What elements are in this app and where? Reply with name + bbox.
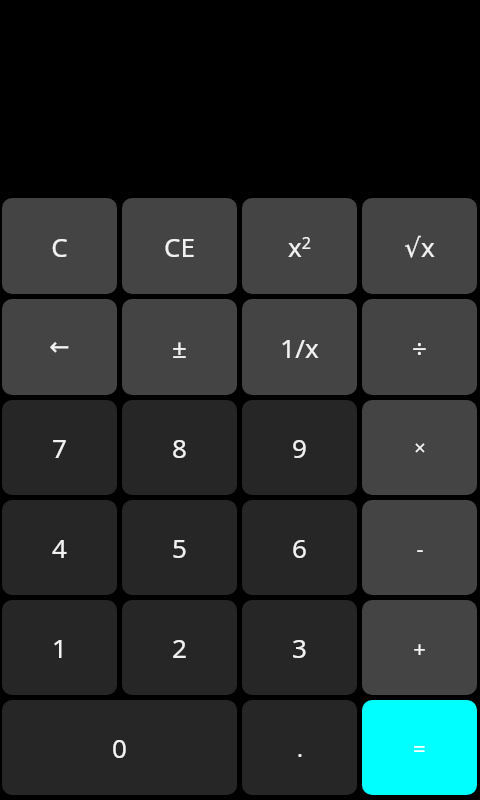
button[interactable]: Minus	[362, 500, 477, 595]
button[interactable]: 5	[122, 500, 237, 595]
staticText: x2	[288, 229, 311, 264]
button[interactable]: Divide	[362, 299, 477, 395]
staticText: 3	[292, 630, 307, 665]
button[interactable]: Equals	[362, 700, 477, 795]
button[interactable]: 9	[242, 400, 357, 495]
button[interactable]: .	[242, 700, 357, 795]
staticText: ×	[414, 434, 426, 461]
button[interactable]: C	[2, 198, 117, 294]
button[interactable]: 3	[242, 600, 357, 695]
button[interactable]: CE	[122, 198, 237, 294]
button[interactable]: 6	[242, 500, 357, 595]
staticText: 5	[172, 530, 187, 565]
staticText: .	[297, 733, 303, 763]
button[interactable]: 4	[2, 500, 117, 595]
staticText: ÷	[412, 330, 427, 365]
button[interactable]: 2	[122, 600, 237, 695]
button[interactable]: Plus minus	[122, 299, 237, 395]
staticText: 0	[112, 730, 127, 765]
button[interactable]: x squared	[242, 198, 357, 294]
staticText: 7	[52, 430, 67, 465]
button[interactable]: square root	[362, 198, 477, 294]
staticText: 1	[52, 630, 67, 665]
staticText: 6	[292, 530, 307, 565]
staticText: +	[413, 633, 426, 663]
staticText: CE	[164, 229, 195, 264]
button[interactable]: 0	[2, 700, 237, 795]
staticText: 4	[52, 530, 67, 565]
staticText: ±	[172, 330, 187, 365]
staticText: 2	[172, 630, 187, 665]
button[interactable]: 1	[2, 600, 117, 695]
staticText: C	[51, 229, 68, 264]
button[interactable]: 7	[2, 400, 117, 495]
staticText: 1/x	[280, 330, 319, 365]
button[interactable]: Backspace	[2, 299, 117, 395]
staticText: ←	[49, 333, 70, 361]
staticText: √x	[404, 229, 435, 264]
staticText: 9	[292, 430, 307, 465]
staticText: -	[416, 533, 424, 563]
button[interactable]: 8	[122, 400, 237, 495]
staticText: =	[413, 733, 426, 763]
button[interactable]: Plus	[362, 600, 477, 695]
button[interactable]: Reciprocal	[242, 299, 357, 395]
staticText: 8	[172, 430, 187, 465]
button[interactable]: Multiply	[362, 400, 477, 495]
